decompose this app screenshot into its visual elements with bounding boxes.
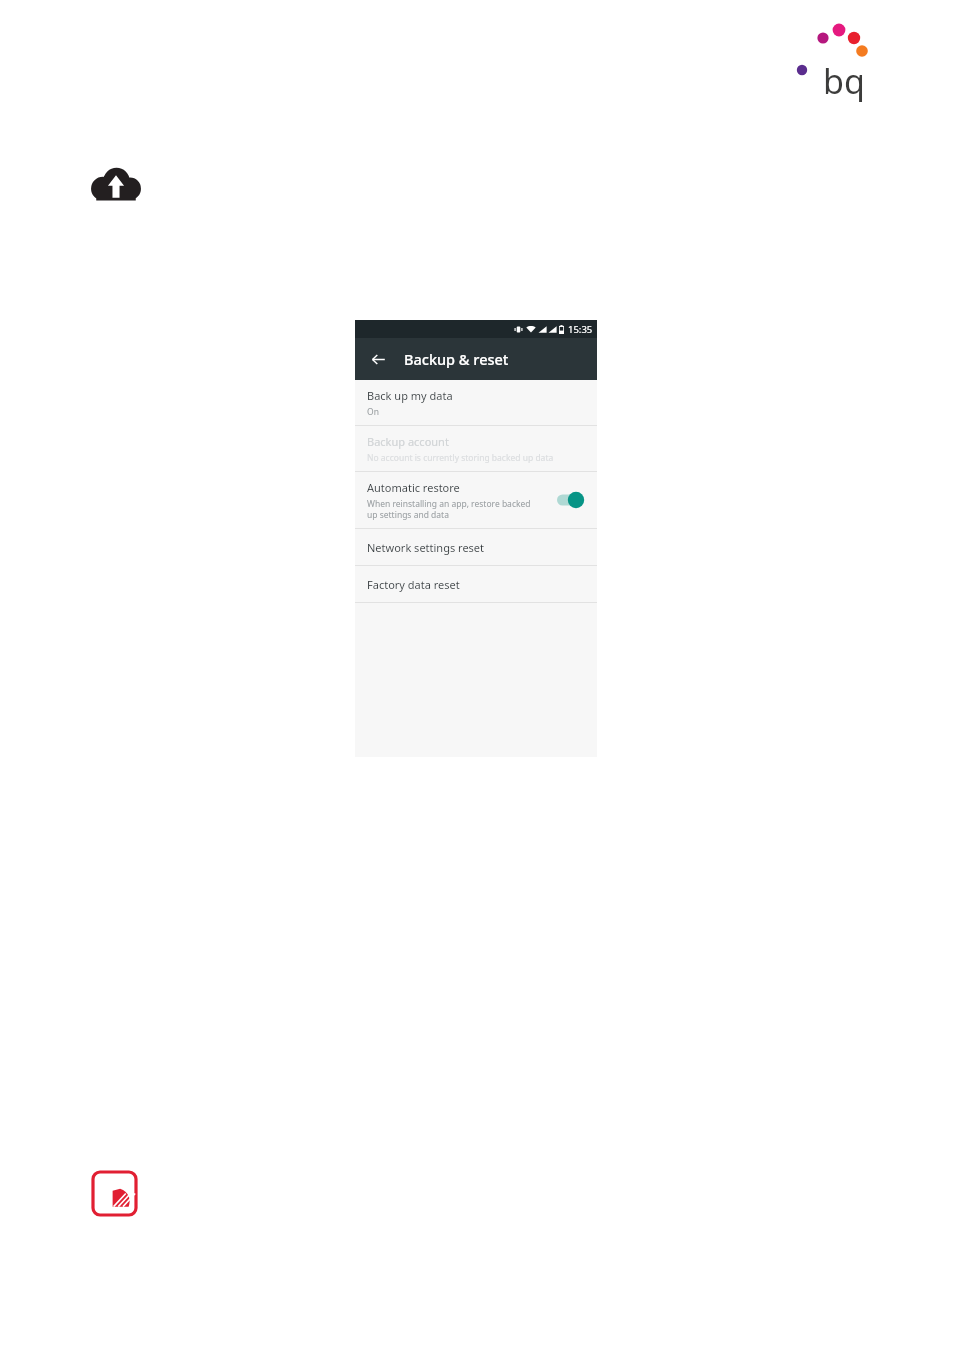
staticText: When reinstalling an app, restore backed…: [367, 498, 543, 520]
button[interactable]: Factory data reset: [355, 566, 597, 602]
staticText: Backup & reset: [404, 349, 509, 369]
button[interactable]: Backup account: [355, 426, 597, 471]
other: Tap gesture: [91, 1170, 138, 1217]
button[interactable]: Automatic restore toggle: [555, 491, 585, 509]
button[interactable]: Automatic restore: [355, 472, 597, 528]
staticText: bq: [823, 58, 865, 104]
button[interactable]: Back up my data: [355, 380, 597, 425]
staticText: Backup account: [367, 434, 449, 449]
staticText: No account is currently storing backed u…: [367, 452, 554, 464]
button[interactable]: Network settings reset: [355, 529, 597, 565]
staticText: Network settings reset: [367, 540, 485, 555]
staticText: Automatic restore: [367, 480, 460, 495]
staticText: Back up my data: [367, 388, 453, 403]
button[interactable]: Back: [366, 347, 390, 371]
staticText: 15:35: [568, 323, 593, 336]
staticText: Factory data reset: [367, 577, 460, 592]
staticText: On: [367, 406, 379, 418]
other: Backup to cloud: [90, 166, 142, 202]
